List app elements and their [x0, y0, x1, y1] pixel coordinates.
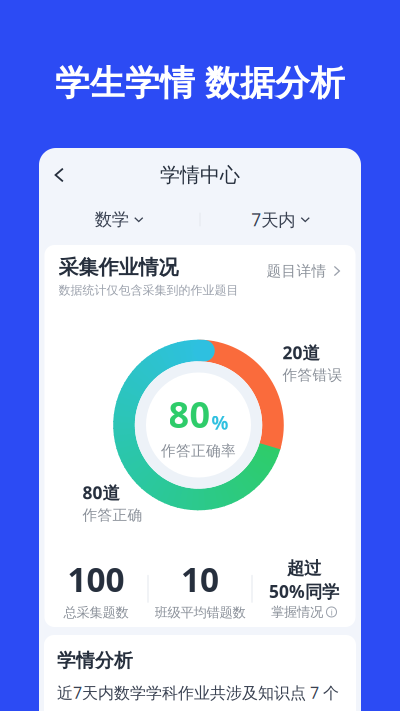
staticText: 采集作业情况 [58, 255, 178, 280]
staticText: 7天内 [251, 208, 295, 231]
staticText: 数学 [95, 209, 129, 230]
button[interactable]: 7天内 [241, 202, 320, 237]
staticText: 100 [67, 557, 124, 601]
staticText: 数据统计仅包含采集到的作业题目 [58, 283, 238, 298]
staticText: 掌握情况 [271, 604, 323, 620]
staticText: i [330, 606, 332, 618]
staticText: 近7天内数学学科作业共涉及知识点 7 个 [57, 682, 339, 703]
staticText: 20道 [282, 341, 319, 364]
staticText: 学生学情 数据分析 [55, 62, 345, 105]
staticText: 题目详情 [266, 262, 326, 280]
staticText: 班级平均错题数 [154, 604, 245, 621]
staticText: 作答正确 [82, 506, 142, 524]
staticText: 50%同学 [269, 580, 339, 603]
staticText: 10 [181, 557, 219, 601]
staticText: 80 [168, 390, 210, 438]
staticText: 总采集题数 [63, 604, 128, 621]
staticText: 超过 [287, 557, 321, 579]
staticText: % [211, 410, 228, 435]
staticText: 学情中心 [160, 163, 240, 187]
staticText: 学情分析 [57, 649, 133, 672]
staticText: 作答正确率 [161, 442, 236, 460]
button[interactable]: 题目详情 [256, 255, 355, 287]
button[interactable]: 返回 [39, 157, 68, 193]
staticText: 80道 [82, 481, 119, 504]
staticText: 作答错误 [282, 366, 342, 384]
button[interactable]: 数学 [85, 203, 154, 236]
